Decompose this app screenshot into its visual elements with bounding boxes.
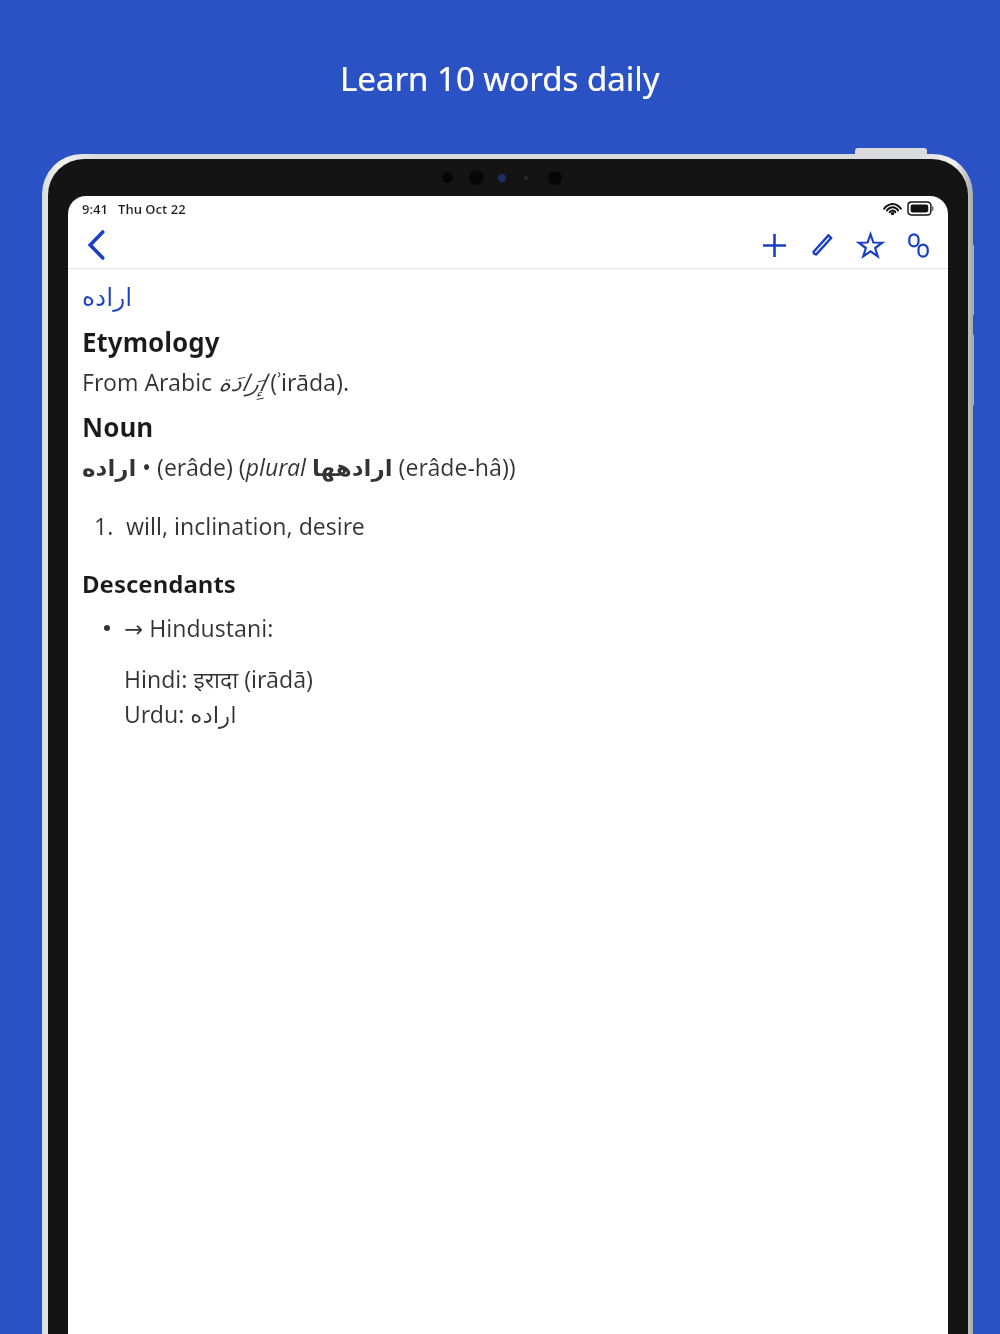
staticText: 1. <box>94 510 114 541</box>
staticText: → Hindustani: <box>124 612 274 643</box>
staticText: اراده • (erâde) (plural ارادهها (erâde-h… <box>82 451 516 482</box>
staticText: Descendants <box>82 567 236 600</box>
staticText: will, inclination, desire <box>126 510 365 541</box>
button[interactable]: Copy link <box>896 223 940 267</box>
button[interactable]: Edit <box>800 223 844 267</box>
staticText: Urdu: اراده <box>124 698 237 729</box>
button[interactable]: Favourite <box>848 223 892 267</box>
staticText: Noun <box>82 409 154 444</box>
staticText: اراده <box>82 283 133 312</box>
staticText: Etymology <box>82 324 220 359</box>
button[interactable]: Back <box>72 221 120 268</box>
staticText: Hindi: इरादा (irādā) <box>124 663 313 694</box>
staticText: Learn 10 words daily <box>340 56 660 101</box>
staticText: Thu Oct 22 <box>118 200 186 218</box>
staticText: From Arabic إِرَادَة (ʾirāda). <box>82 366 350 397</box>
button[interactable]: Add <box>752 223 796 267</box>
staticText: 9:41 <box>82 200 108 218</box>
